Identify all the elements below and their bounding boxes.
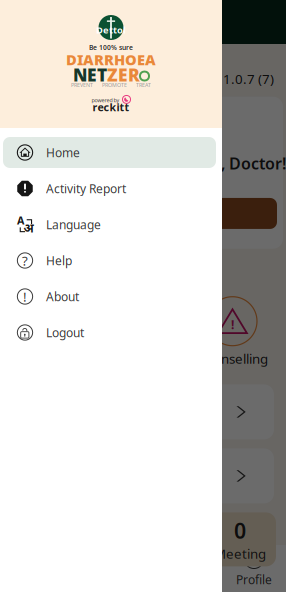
staticText: DIARRHOEA xyxy=(66,50,156,69)
staticText: Language xyxy=(46,216,101,232)
button[interactable] xyxy=(0,384,286,439)
button[interactable]: ! xyxy=(3,281,216,312)
button[interactable]: Logout xyxy=(3,317,216,348)
staticText: Profile xyxy=(236,571,272,587)
staticText: Help xyxy=(46,252,72,268)
staticText: About xyxy=(46,288,79,304)
staticText: Welcome back, Doctor! xyxy=(110,153,286,174)
staticText: Activity Report xyxy=(46,180,126,196)
staticText: Home xyxy=(46,144,80,160)
staticText: Meeting xyxy=(214,545,266,562)
button[interactable]: Profile xyxy=(224,546,284,590)
staticText: powered by xyxy=(91,97,119,104)
staticText: Logout xyxy=(46,324,84,340)
staticText: ! xyxy=(231,317,234,333)
staticText: reckitt xyxy=(92,100,129,114)
button[interactable]: ? xyxy=(3,245,216,276)
staticText: A xyxy=(17,213,24,227)
staticText: PREVENT xyxy=(71,81,93,88)
staticText: अ xyxy=(24,220,34,236)
button[interactable] xyxy=(0,448,286,503)
staticText: App Version: 1.0.7 (7) xyxy=(141,70,274,88)
staticText: ZER xyxy=(107,63,140,86)
button[interactable]: Home xyxy=(3,137,216,168)
staticText: Counselling xyxy=(197,350,268,367)
button[interactable]: Activity Report xyxy=(3,173,216,204)
staticText: NET xyxy=(73,63,107,86)
staticText: ! xyxy=(23,288,27,305)
staticText: PROMOTE xyxy=(102,81,127,88)
button[interactable]: Start the Day xyxy=(18,198,277,229)
staticText: 0 xyxy=(234,516,246,545)
staticText: Be 100% sure xyxy=(89,43,133,52)
staticText: ? xyxy=(22,252,28,269)
button[interactable]: A xyxy=(3,209,216,240)
staticText: TREAT xyxy=(136,81,151,88)
staticText: Dettol xyxy=(96,24,126,36)
